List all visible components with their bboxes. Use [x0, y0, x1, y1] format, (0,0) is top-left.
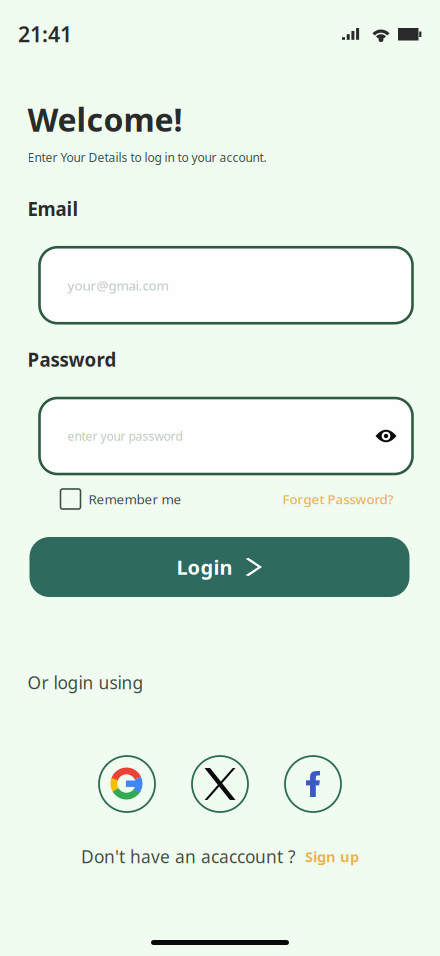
- button[interactable]: Sign in with Facebook: [285, 756, 341, 812]
- button[interactable]: Login: [29, 537, 409, 597]
- button[interactable]: Show password: [375, 428, 396, 443]
- staticText: Forget Password?: [282, 490, 393, 508]
- button[interactable]: Remember me: [60, 485, 181, 513]
- staticText: Don't have an acaccount ?: [81, 845, 296, 868]
- button[interactable]: Sign up: [305, 847, 359, 866]
- staticText: Or login using: [27, 671, 143, 694]
- staticText: 21:41: [18, 20, 72, 48]
- staticText: Sign up: [305, 847, 359, 866]
- staticText: Email: [27, 196, 78, 221]
- staticText: Login: [176, 554, 232, 580]
- staticText: Enter Your Details to log in to your acc…: [27, 149, 266, 165]
- button[interactable]: Sign in with Google: [99, 756, 155, 812]
- button[interactable]: Forget Password?: [282, 486, 393, 512]
- button[interactable]: Sign in with X: [192, 756, 248, 812]
- staticText: Welcome!: [27, 98, 182, 140]
- staticText: enter your password: [67, 428, 182, 444]
- staticText: Remember me: [88, 490, 181, 508]
- staticText: your@gmai.com: [67, 276, 168, 294]
- staticText: Password: [27, 347, 116, 372]
